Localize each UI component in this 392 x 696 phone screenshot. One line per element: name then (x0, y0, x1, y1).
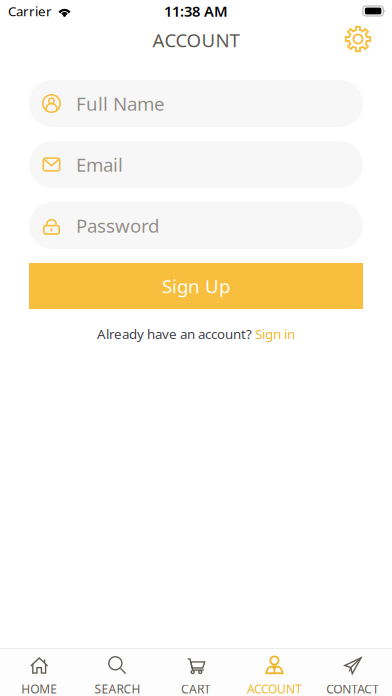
button[interactable]: CART (157, 649, 235, 696)
button[interactable]: Settings (339, 20, 377, 58)
staticText: HOME (21, 681, 57, 696)
button[interactable]: SEARCH (78, 649, 157, 696)
button[interactable]: HOME (0, 649, 78, 696)
staticText: ACCOUNT (152, 28, 239, 52)
staticText: SEARCH (95, 681, 141, 696)
staticText: Already have an account? (97, 325, 255, 343)
staticText: CART (181, 681, 211, 696)
staticText: Carrier (8, 2, 52, 20)
button[interactable]: Sign in (255, 325, 295, 343)
staticText: CONTACT (326, 681, 379, 696)
staticText: Password (76, 213, 159, 238)
staticText: ACCOUNT (247, 681, 302, 696)
button[interactable]: Sign Up (29, 263, 363, 309)
button[interactable]: ACCOUNT (235, 649, 314, 696)
staticText: Email (76, 152, 123, 177)
button[interactable]: CONTACT (314, 649, 392, 696)
staticText: Sign Up (162, 274, 230, 298)
staticText: Sign in (255, 325, 295, 343)
staticText: Full Name (76, 91, 165, 116)
staticText: 11:38 AM (164, 1, 228, 21)
